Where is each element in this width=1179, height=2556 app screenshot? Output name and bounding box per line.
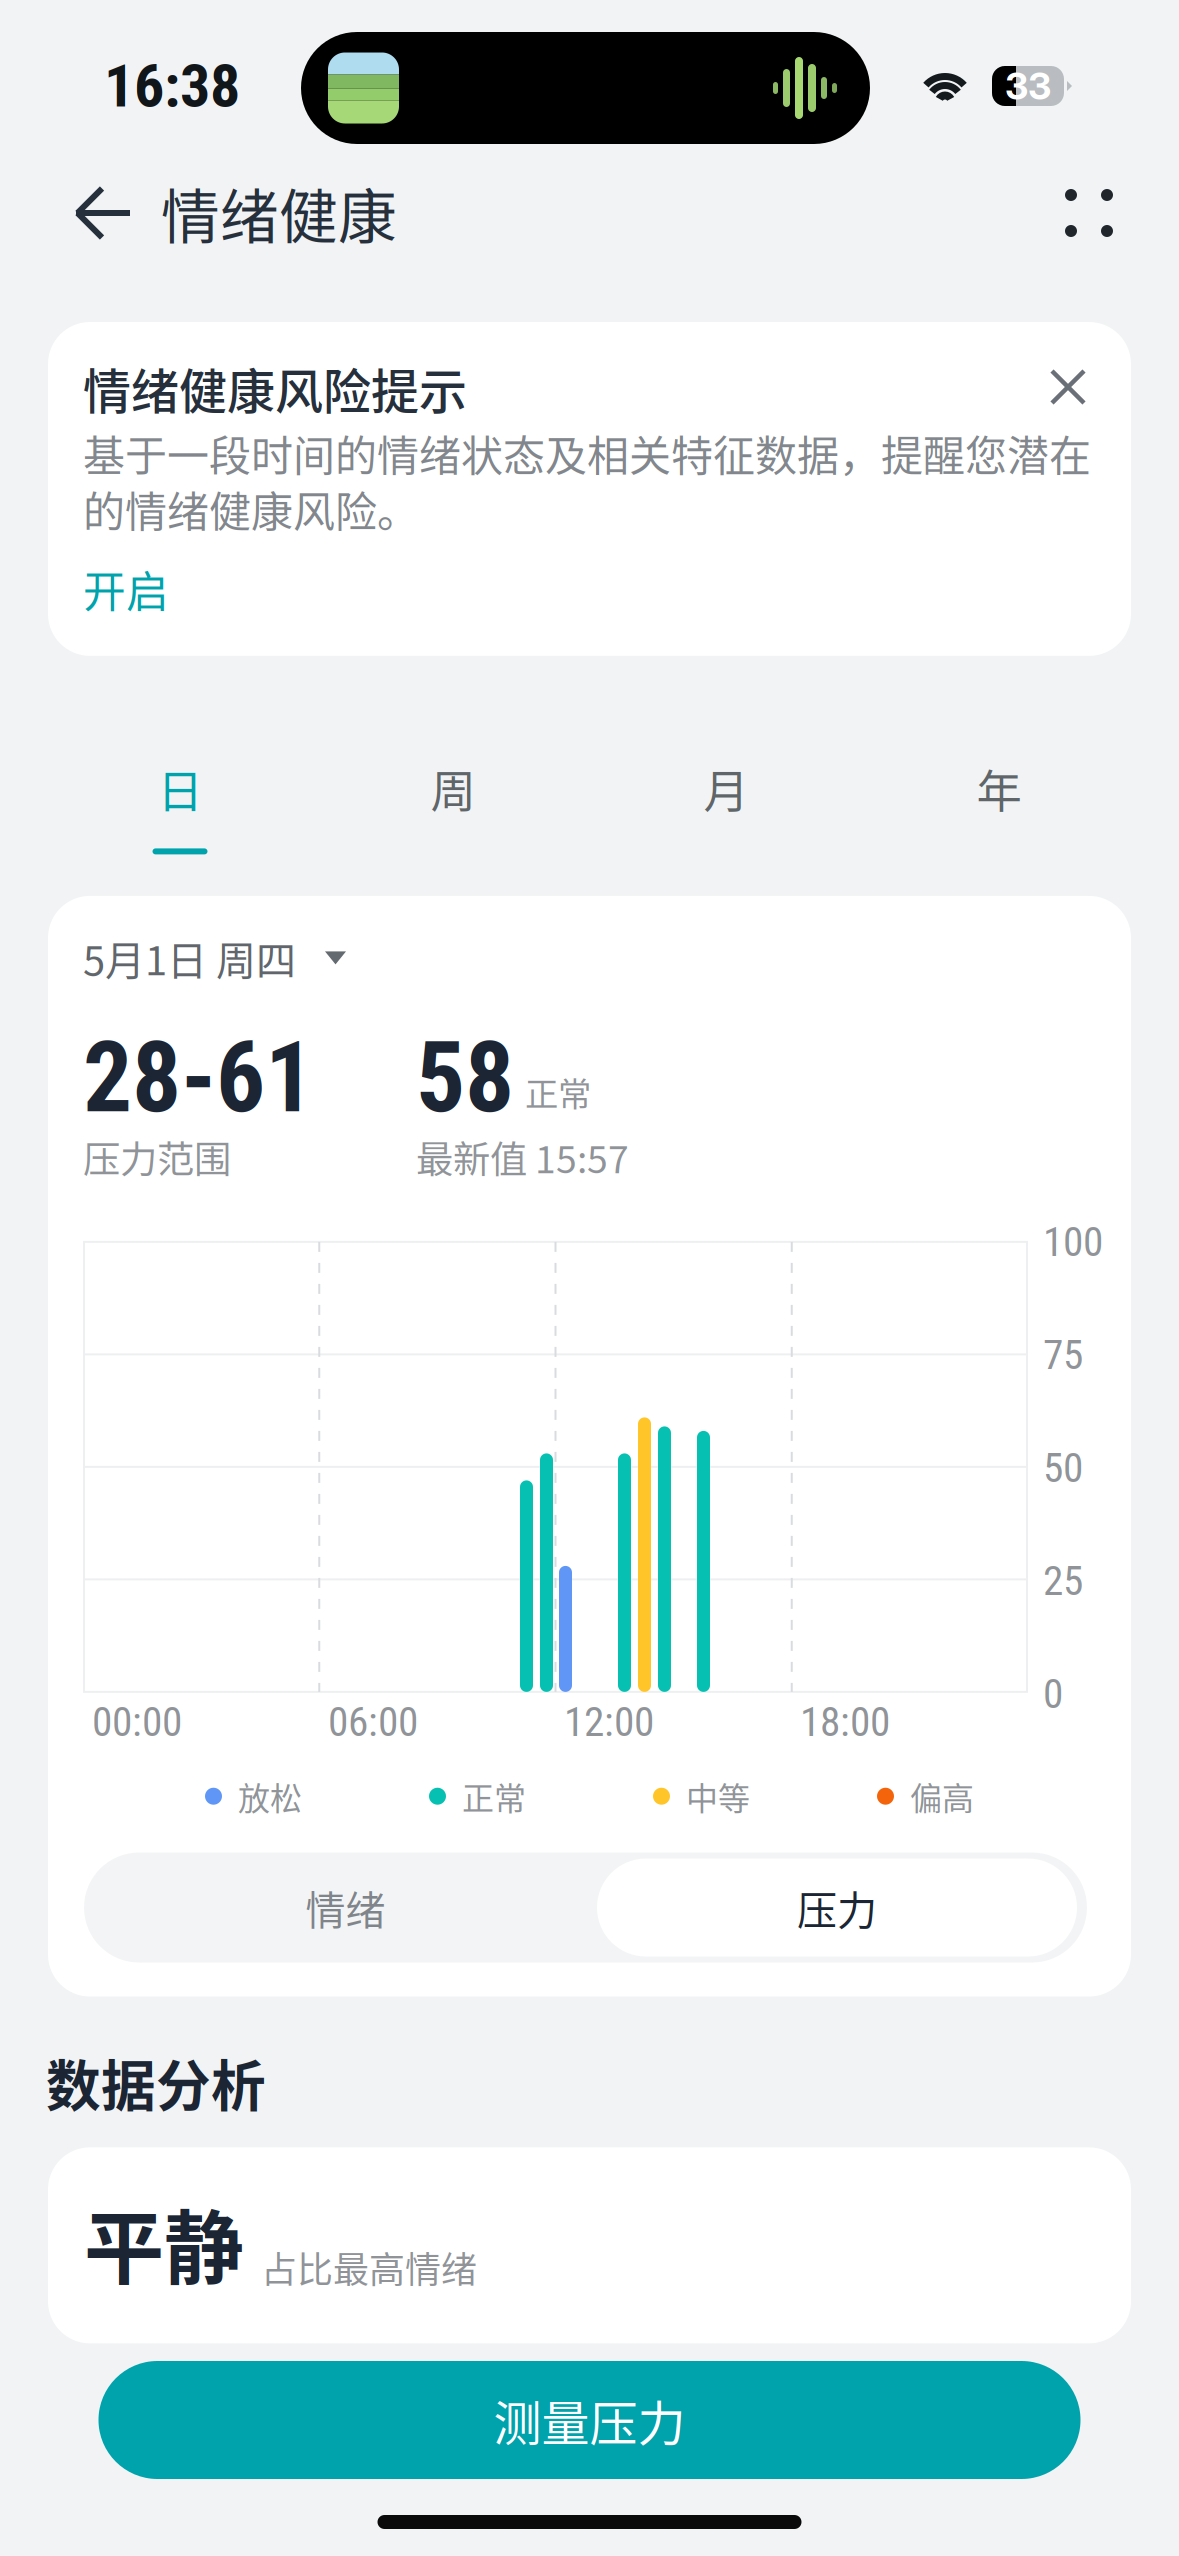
staticText: 占比最高情绪 [261, 2243, 477, 2291]
button[interactable]: 年 [862, 763, 1135, 866]
button[interactable]: 月 [589, 763, 862, 866]
staticText: 5月1日 周四 [83, 931, 296, 985]
staticText: 18:00 [800, 1698, 890, 1746]
staticText: 测量压力 [493, 2388, 685, 2452]
staticText: 58 [416, 1021, 514, 1135]
staticText: 75 [1043, 1331, 1083, 1379]
button[interactable]: More options [1031, 159, 1147, 267]
staticText: 100 [1043, 1218, 1103, 1266]
staticText: 情绪健康风险提示 [83, 356, 467, 420]
staticText: 28-61 [83, 1021, 314, 1135]
staticText: 情绪健康 [161, 174, 397, 252]
staticText: 月 [703, 758, 748, 819]
staticText: 16:38 [104, 51, 240, 121]
staticText: 偏高 [910, 1775, 974, 1817]
staticText: 基于一段时间的情绪状态及相关特征数据，提醒您潜在的情绪健康风险。 [83, 425, 1091, 537]
staticText: 00:00 [92, 1698, 182, 1746]
staticText: 正常 [462, 1775, 526, 1817]
staticText: 年 [976, 758, 1021, 819]
staticText: 中等 [686, 1775, 750, 1817]
staticText: 压力 [797, 1881, 877, 1934]
button[interactable]: 周 [316, 763, 589, 866]
button[interactable]: Back [45, 159, 161, 267]
staticText: 压力范围 [83, 1132, 231, 1182]
staticText: 最新值 15:57 [416, 1132, 629, 1182]
button[interactable]: Dismiss [1048, 356, 1100, 406]
button[interactable]: 日 [43, 763, 316, 866]
staticText: 开启 [83, 560, 169, 617]
button[interactable]: 平静 [48, 2147, 1131, 2343]
staticText: 情绪 [305, 1881, 385, 1934]
button[interactable]: 情绪 [94, 1858, 597, 1956]
staticText: 25 [1043, 1557, 1083, 1605]
staticText: 33 [1005, 63, 1051, 109]
staticText: 06:00 [328, 1698, 418, 1746]
staticText: 50 [1043, 1444, 1083, 1492]
staticText: 12:00 [564, 1698, 654, 1746]
staticText: 正常 [525, 1069, 591, 1114]
button[interactable]: 压力 [597, 1858, 1077, 1956]
button[interactable]: 5月1日 周四 [83, 935, 1096, 981]
staticText: 放松 [238, 1775, 302, 1817]
staticText: 周 [430, 758, 475, 819]
button[interactable]: 开启 [83, 567, 169, 611]
button[interactable]: 测量压力 [98, 2361, 1080, 2479]
staticText: 平静 [84, 2189, 244, 2295]
staticText: 数据分析 [46, 2045, 266, 2118]
staticText: 0 [1043, 1670, 1063, 1718]
staticText: 日 [157, 758, 202, 819]
